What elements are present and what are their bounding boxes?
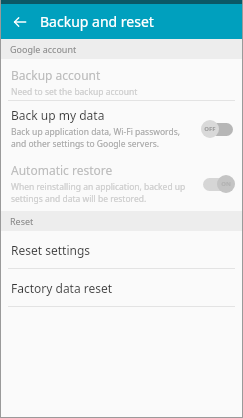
staticText: settings and data will be restored. bbox=[11, 193, 147, 205]
staticText: ON bbox=[221, 180, 231, 188]
staticText: Reset bbox=[10, 215, 34, 227]
staticText: Automatic restore bbox=[11, 162, 113, 178]
button[interactable]: Toggle off bbox=[201, 120, 235, 138]
staticText: Google account bbox=[10, 43, 77, 55]
staticText: Back up application data, Wi-Fi password… bbox=[11, 126, 180, 138]
staticText: Backup and reset bbox=[40, 12, 154, 31]
button[interactable]: Toggle on bbox=[201, 175, 235, 193]
staticText: Back up my data bbox=[11, 107, 105, 123]
button[interactable]: Back up my data bbox=[0, 101, 243, 156]
staticText: OFF bbox=[204, 125, 216, 133]
staticText: Reset settings bbox=[11, 242, 91, 258]
button[interactable]: Back bbox=[6, 8, 34, 36]
button[interactable]: Backup account bbox=[0, 59, 243, 100]
button[interactable]: Automatic restore bbox=[0, 156, 243, 211]
staticText: Need to set the backup account bbox=[11, 86, 138, 98]
staticText: Factory data reset bbox=[11, 280, 113, 296]
staticText: When reinstalling an application, backed… bbox=[11, 181, 186, 193]
staticText: Backup account bbox=[11, 67, 101, 83]
staticText: and other settings to Google servers. bbox=[11, 138, 160, 150]
button[interactable]: Factory data reset bbox=[0, 269, 243, 306]
button[interactable]: Reset settings bbox=[0, 231, 243, 268]
